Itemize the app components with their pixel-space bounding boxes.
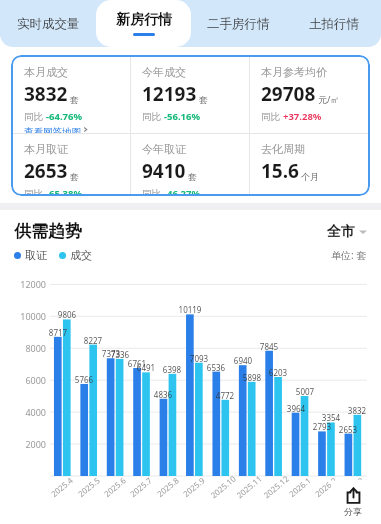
staticText: 4000	[14, 406, 46, 418]
staticText: 供需趋势	[14, 221, 82, 242]
staticText: 7845	[257, 341, 281, 352]
staticText: 2025.8	[154, 474, 181, 499]
staticText: 2653	[24, 158, 68, 184]
staticText: 6203	[266, 367, 290, 378]
button[interactable]: 实时成交量	[0, 0, 96, 47]
staticText: 10000	[14, 310, 46, 322]
staticText: 分享	[344, 506, 362, 517]
staticText: 8000	[14, 342, 46, 354]
staticText: 成交	[70, 248, 92, 262]
staticText: -65.38%	[46, 187, 83, 194]
staticText: 同比	[24, 110, 46, 123]
staticText: 2026.1	[286, 474, 313, 499]
staticText: 2026.3	[339, 474, 366, 499]
staticText: 套	[70, 94, 79, 105]
button[interactable]: 全市	[327, 223, 367, 241]
staticText: 3832	[345, 405, 369, 416]
staticText: 套	[199, 94, 208, 105]
staticText: 二手房行情	[207, 16, 270, 32]
staticText: 套	[70, 171, 79, 182]
staticText: 7093	[187, 353, 211, 364]
staticText: 同比	[24, 187, 46, 194]
staticText: 6536	[204, 362, 228, 373]
staticText: 2025.6	[101, 474, 128, 499]
staticText: 同比	[261, 110, 283, 123]
staticText: -46.27%	[164, 187, 201, 194]
staticText: 7373	[99, 348, 123, 359]
staticText: 5898	[240, 372, 264, 383]
staticText: -64.76%	[46, 110, 83, 123]
staticText: 9806	[55, 309, 79, 320]
staticText: 6940	[231, 355, 255, 366]
staticText: 新房行情	[116, 11, 172, 29]
staticText: 15.6	[261, 158, 299, 184]
staticText: 3832	[24, 81, 68, 107]
staticText: 取证	[25, 248, 47, 262]
staticText: 实时成交量	[17, 16, 80, 32]
button[interactable]: 新房行情	[96, 0, 191, 47]
staticText: 单位: 套	[331, 248, 367, 262]
button[interactable]: 分享	[331, 480, 375, 524]
staticText: 10119	[178, 304, 202, 315]
button[interactable]: 二手房行情	[191, 0, 286, 47]
staticText: 元/㎡	[318, 93, 340, 105]
staticText: 6000	[14, 374, 46, 386]
staticText: 2025.10	[208, 473, 238, 500]
staticText: 5007	[293, 386, 317, 397]
staticText: 2025.7	[127, 474, 154, 499]
staticText: 土拍行情	[309, 16, 359, 32]
button[interactable]: 土拍行情	[286, 0, 381, 47]
staticText: 2793	[310, 421, 334, 432]
staticText: 2025.9	[180, 474, 207, 499]
staticText: 6491	[134, 362, 158, 373]
staticText: 2025.5	[75, 474, 102, 499]
staticText: 本月取证	[24, 142, 68, 156]
staticText: 4836	[151, 389, 175, 400]
staticText: 同比	[142, 187, 164, 194]
button[interactable]: 查看网签地图	[24, 126, 89, 133]
staticText: 去化周期	[261, 142, 305, 156]
staticText: 12000	[14, 278, 46, 290]
staticText: 2025.4	[48, 474, 75, 499]
staticText: 3354	[319, 412, 343, 423]
staticText: 2025.11	[234, 473, 264, 500]
staticText: 2025.12	[261, 473, 291, 500]
staticText: 2026.2	[312, 474, 339, 499]
staticText: 7336	[108, 349, 132, 360]
staticText: 套	[188, 171, 197, 182]
staticText: 同比	[142, 110, 164, 123]
staticText: -56.16%	[164, 110, 201, 123]
staticText: 查看网签地图	[24, 126, 81, 133]
staticText: 2000	[14, 438, 46, 450]
staticText: +37.28%	[283, 110, 322, 123]
staticText: 6398	[160, 364, 184, 375]
staticText: 8717	[46, 327, 70, 338]
staticText: 6761	[125, 358, 149, 369]
staticText: 8227	[81, 335, 105, 346]
staticText: 29708	[261, 81, 316, 107]
staticText: 全市	[327, 223, 355, 241]
staticText: 本月成交	[24, 65, 68, 79]
staticText: 今年成交	[142, 65, 186, 79]
staticText: 4772	[213, 390, 237, 401]
staticText: 9410	[142, 158, 186, 184]
staticText: 12193	[142, 81, 197, 107]
staticText: 2653	[336, 424, 360, 435]
staticText: 个月	[301, 171, 319, 182]
staticText: 3964	[284, 403, 308, 414]
staticText: 5766	[72, 374, 96, 385]
staticText: 本月参考均价	[261, 65, 327, 79]
staticText: 今年取证	[142, 142, 186, 156]
